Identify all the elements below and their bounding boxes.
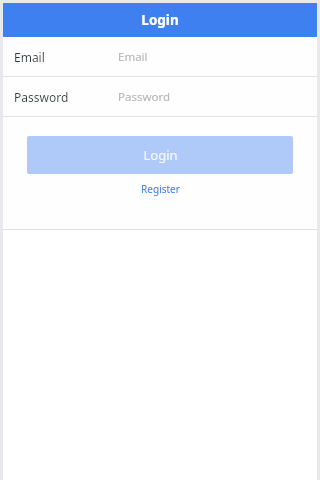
button[interactable]: Register	[141, 182, 180, 196]
staticText: Login	[141, 11, 179, 29]
staticText: Register	[141, 182, 180, 196]
button[interactable]: Email	[3, 37, 317, 76]
staticText: Login	[143, 146, 178, 164]
button[interactable]: Password	[3, 77, 317, 116]
staticText: Password	[14, 89, 69, 105]
button[interactable]: Login	[27, 136, 293, 174]
staticText: Email	[118, 49, 148, 65]
staticText: Email	[14, 49, 45, 65]
staticText: Password	[118, 89, 171, 105]
